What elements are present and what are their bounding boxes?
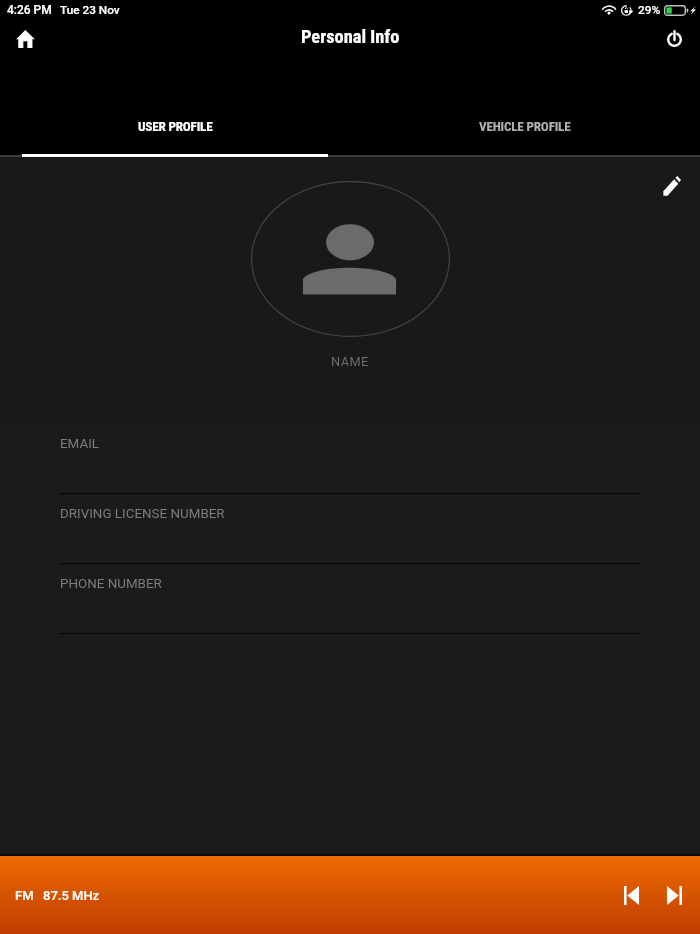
- button[interactable]: FM: [8, 873, 108, 917]
- staticText: Tue 23 Nov: [60, 3, 120, 17]
- button[interactable]: DRIVING LICENSE NUMBER: [0, 492, 700, 562]
- staticText: DRIVING LICENSE NUMBER: [60, 506, 225, 522]
- button[interactable]: Previous track: [614, 878, 648, 912]
- button[interactable]: EMAIL: [0, 422, 700, 492]
- button[interactable]: USER PROFILE: [0, 60, 350, 156]
- button[interactable]: VEHICLE PROFILE: [350, 60, 700, 156]
- button[interactable]: PHONE NUMBER: [0, 562, 700, 632]
- staticText: 29%: [638, 3, 661, 17]
- button[interactable]: Profile picture: [251, 181, 450, 337]
- staticText: FM: [15, 888, 34, 903]
- staticText: EMAIL: [60, 436, 100, 452]
- button[interactable]: Next track: [657, 878, 691, 912]
- staticText: PHONE NUMBER: [60, 576, 162, 592]
- button[interactable]: Power: [656, 20, 692, 56]
- staticText: 87.5 MHz: [43, 888, 100, 903]
- staticText: NAME: [331, 354, 369, 369]
- button[interactable]: Home: [7, 21, 43, 57]
- button[interactable]: Edit profile: [655, 169, 689, 203]
- staticText: VEHICLE PROFILE: [479, 119, 571, 134]
- staticText: USER PROFILE: [138, 119, 213, 134]
- staticText: Personal Info: [301, 26, 400, 48]
- staticText: 4:26 PM: [7, 3, 52, 17]
